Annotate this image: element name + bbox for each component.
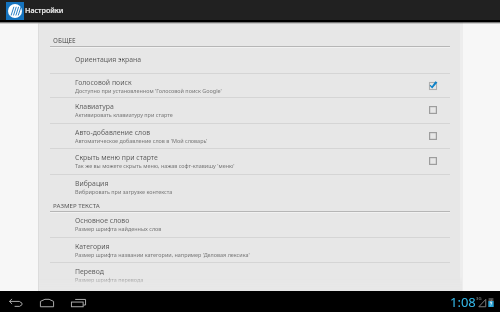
staticText: Авто-добавление слов — [75, 128, 151, 137]
staticText: 1:08 — [450, 293, 476, 311]
button[interactable]: Категория — [39, 237, 462, 262]
staticText: Ориентация экрана — [75, 55, 142, 64]
staticText: Так же вы можете скрыть меню, нажав софт… — [75, 162, 235, 169]
button[interactable]: Клавиатура — [39, 97, 462, 123]
staticText: 3G — [476, 296, 482, 302]
staticText: РАЗМЕР ТЕКСТА — [53, 201, 100, 209]
staticText: Голосовой поиск — [75, 78, 132, 87]
button[interactable]: Скрыть меню при старте — [39, 148, 462, 173]
button[interactable]: Home — [36, 292, 58, 312]
staticText: Перевод — [75, 267, 104, 276]
staticText: Доступно при установленном 'Голосовой по… — [75, 87, 222, 94]
button[interactable]: Ориентация экрана — [39, 46, 462, 73]
staticText: Настройки — [25, 5, 64, 15]
staticText: Активировать клавиатуру при старте — [75, 111, 173, 118]
staticText: Клавиатура — [75, 102, 114, 111]
button[interactable]: Основное слово — [39, 211, 462, 237]
staticText: Автоматическое добавление слов в 'Мой сл… — [75, 137, 208, 144]
button[interactable]: Вибрация — [39, 174, 462, 199]
staticText: Размер шрифта перевода — [75, 276, 144, 283]
button[interactable]: Авто-добавление слов — [39, 123, 462, 148]
staticText: Категория — [75, 242, 110, 251]
button[interactable]: Recent apps — [67, 292, 89, 312]
staticText: ОБЩЕЕ — [53, 36, 76, 45]
staticText: Вибрировать при загрузке контекста — [75, 188, 173, 195]
button[interactable]: Перевод — [39, 262, 462, 288]
staticText: Размер шрифта найденных слов — [75, 225, 162, 232]
button[interactable]: Back — [4, 292, 27, 312]
button[interactable]: Голосовой поиск — [39, 73, 462, 98]
staticText: Основное слово — [75, 216, 130, 225]
staticText: Размер шрифта названии категории, наприм… — [75, 251, 250, 258]
button[interactable]: App icon — [6, 2, 24, 20]
staticText: Вибрация — [75, 179, 109, 188]
staticText: Скрыть меню при старте — [75, 153, 158, 162]
